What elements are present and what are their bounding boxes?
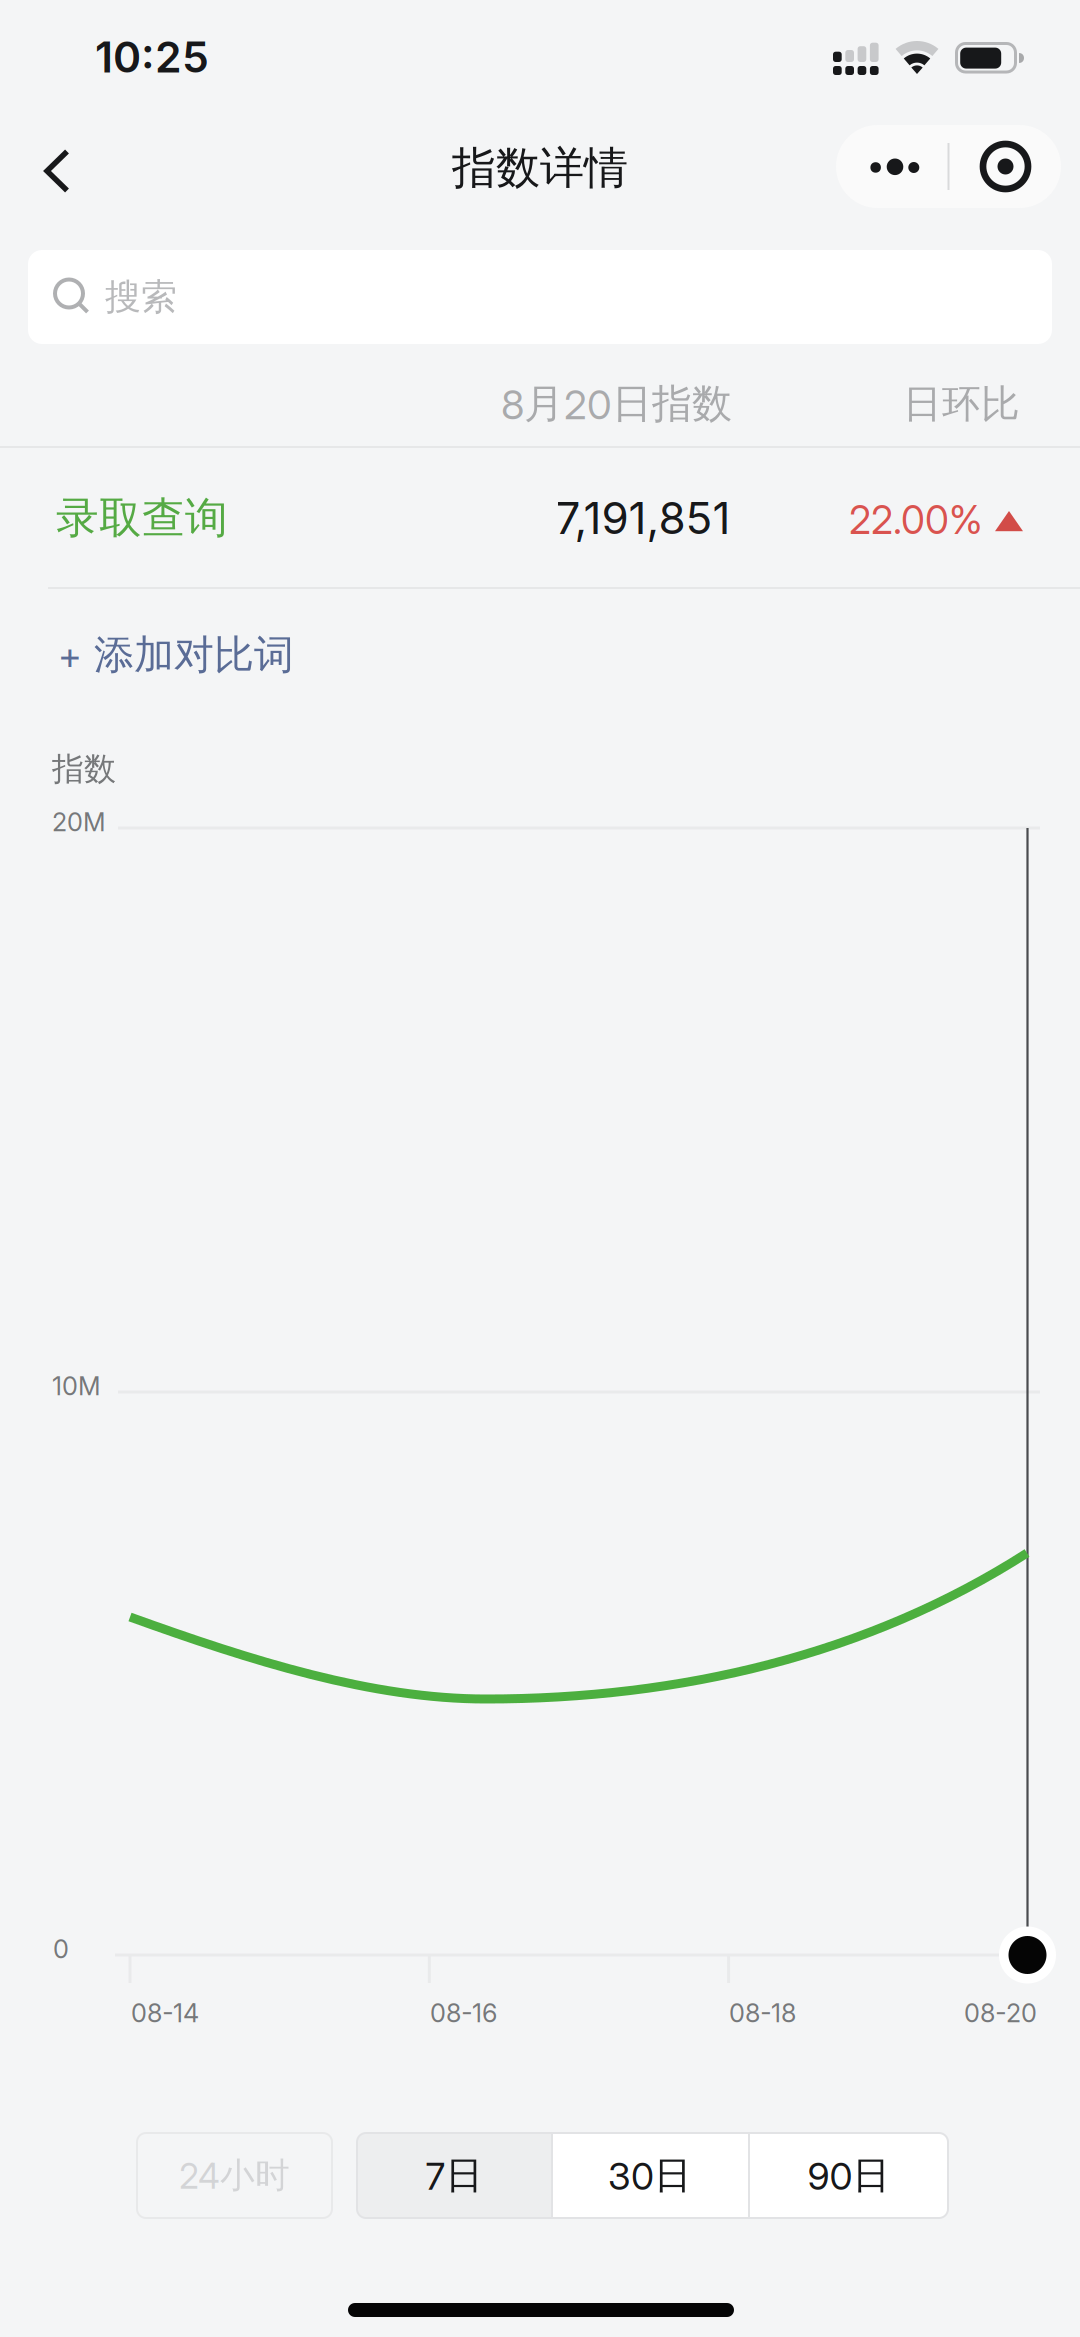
staticText: 10:25 bbox=[95, 31, 209, 83]
staticText: 指数 bbox=[52, 749, 116, 789]
staticText: 指数详情 bbox=[452, 140, 628, 196]
staticText: 30日 bbox=[608, 2152, 691, 2199]
button[interactable]: 7日 bbox=[357, 2133, 551, 2218]
button[interactable]: + bbox=[0, 598, 1080, 714]
button[interactable]: 24小时 bbox=[137, 2133, 332, 2218]
staticText: 添加对比词 bbox=[94, 630, 294, 680]
staticText: 录取查询 bbox=[56, 491, 228, 545]
staticText: 7,191,851 bbox=[555, 491, 730, 545]
staticText: 08-16 bbox=[430, 1998, 497, 2028]
staticText: 10M bbox=[52, 1371, 101, 1401]
staticText: 90日 bbox=[807, 2152, 889, 2199]
button[interactable]: 搜索 bbox=[28, 250, 1052, 344]
button[interactable]: 返回 bbox=[1, 113, 113, 229]
button[interactable]: 30日 bbox=[551, 2133, 748, 2218]
staticText: 8月20日指数 bbox=[501, 379, 732, 429]
staticText: 22.00% bbox=[849, 497, 983, 543]
staticText: 08-14 bbox=[131, 1998, 199, 2028]
staticText: + bbox=[58, 633, 82, 679]
staticText: 08-20 bbox=[964, 1998, 1037, 2028]
button[interactable]: 90日 bbox=[749, 2133, 948, 2218]
staticText: 20M bbox=[52, 807, 106, 837]
staticText: 7日 bbox=[425, 2152, 482, 2199]
staticText: 日环比 bbox=[903, 380, 1020, 428]
staticText: 搜索 bbox=[105, 274, 177, 320]
button[interactable]: 更多 bbox=[836, 125, 1061, 208]
staticText: 08-18 bbox=[729, 1998, 796, 2028]
staticText: 24小时 bbox=[179, 2154, 290, 2197]
staticText: 0 bbox=[53, 1934, 69, 1964]
